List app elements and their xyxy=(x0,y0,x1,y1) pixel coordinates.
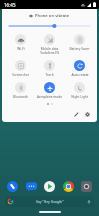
staticText: Mobile data Vodafone IN xyxy=(40,47,59,55)
button[interactable]: Phone xyxy=(6,180,19,193)
staticText: Torch xyxy=(45,73,54,77)
button[interactable]: Chrome xyxy=(62,180,75,193)
button[interactable]: Wi-Fi xyxy=(6,34,35,51)
staticText: Battery Saver xyxy=(69,47,90,51)
button[interactable]: Phone on vibrate xyxy=(2,13,97,19)
staticText: Night Light xyxy=(71,95,88,99)
button[interactable]: Auto-rotate xyxy=(65,60,94,77)
staticText: Say "Hey Google" xyxy=(36,199,64,204)
staticText: 16:45 xyxy=(4,2,16,8)
button[interactable]: Torch xyxy=(35,60,64,77)
staticText: Aeroplane mode xyxy=(37,95,62,99)
button[interactable]: Settings xyxy=(83,110,92,119)
staticText: Wi-Fi xyxy=(17,47,25,51)
staticText: Phone on vibrate xyxy=(35,13,70,19)
button[interactable]: Home xyxy=(39,211,61,213)
staticText: Screenshot xyxy=(12,73,29,77)
button[interactable]: Play Store xyxy=(43,180,56,193)
button[interactable]: Battery Saver xyxy=(65,34,94,51)
button[interactable]: Mobile data Vodafone IN xyxy=(35,34,64,55)
button[interactable]: Camera xyxy=(80,180,93,193)
staticText: Bluetooth xyxy=(13,95,28,99)
button[interactable]: Messages xyxy=(25,180,38,193)
button[interactable]: Night Light xyxy=(65,82,94,99)
staticText: Auto-rotate xyxy=(71,73,89,77)
button[interactable]: Say "Hey Google" xyxy=(5,196,94,207)
button[interactable]: Edit tiles xyxy=(72,110,81,119)
button[interactable]: Screenshot xyxy=(6,60,35,77)
button[interactable]: Bluetooth xyxy=(6,82,35,99)
button[interactable] xyxy=(9,23,90,29)
button[interactable]: Aeroplane mode xyxy=(35,82,64,99)
